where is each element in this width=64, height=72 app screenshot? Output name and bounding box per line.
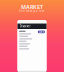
button[interactable]: Get [38, 31, 45, 33]
staticText: Get [39, 30, 44, 34]
staticText: find what you love [19, 9, 45, 13]
staticText: Discover [19, 24, 30, 28]
staticText: MARKET [21, 3, 43, 11]
